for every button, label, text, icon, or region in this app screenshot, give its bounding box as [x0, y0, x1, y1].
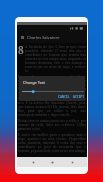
staticText: CANCEL — [58, 95, 70, 99]
staticText: ACCEPT — [73, 95, 84, 99]
staticText: A Parabola do Joio E lhes propos outra p… — [25, 45, 86, 73]
staticText: E atai-o em molhos para o queimar; mas o… — [18, 133, 86, 153]
button[interactable]: CANCEL — [56, 94, 72, 100]
staticText: Change Text — [23, 80, 45, 85]
staticText: 8 — [18, 43, 24, 57]
staticText: Deixai crescer ambos juntos ate a ceifa;… — [18, 119, 86, 131]
button[interactable]: Back — [29, 158, 37, 166]
button[interactable]: Menu — [17, 32, 27, 42]
staticText: E, quando a erva cresceu e frutificou, a… — [18, 75, 86, 95]
staticText: Charles Salvatore — [27, 35, 60, 40]
staticText: E ele lhes disse: Um homem inimigo e que… — [18, 97, 86, 117]
button[interactable]: Home — [48, 158, 56, 166]
button[interactable]: ACCEPT — [71, 94, 85, 100]
button[interactable]: Recents — [68, 158, 76, 166]
